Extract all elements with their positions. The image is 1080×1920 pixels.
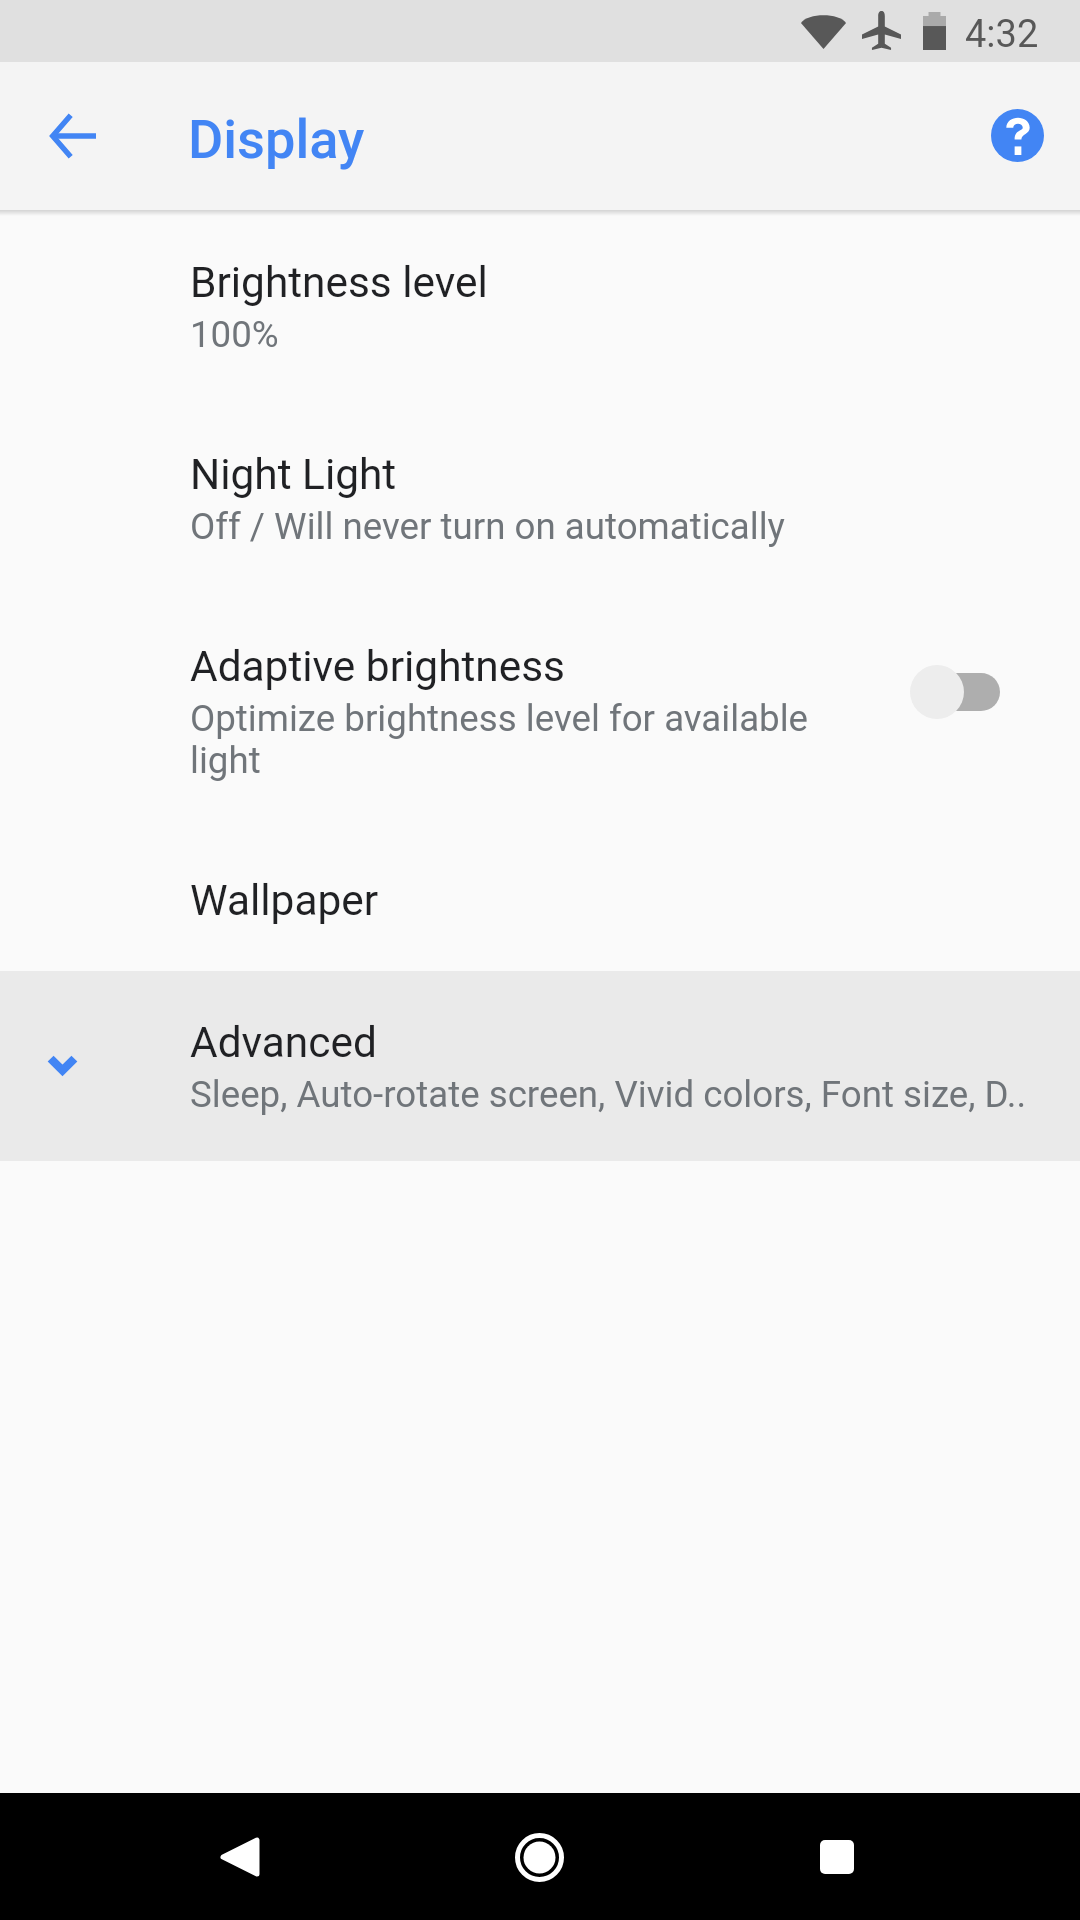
staticText: Night Light: [190, 450, 397, 500]
button[interactable]: Wallpaper: [0, 828, 1080, 971]
staticText: 100%: [190, 313, 279, 356]
staticText: Sleep, Auto-rotate screen, Vivid colors,…: [190, 1073, 1027, 1116]
button[interactable]: Advanced: [0, 971, 1080, 1161]
button[interactable]: Back: [180, 1797, 300, 1917]
staticText: Brightness level: [190, 258, 488, 308]
staticText: Optimize brightness level for available …: [190, 697, 809, 782]
staticText: Wallpaper: [190, 876, 379, 926]
staticText: Off / Will never turn on automatically: [190, 505, 785, 548]
button[interactable]: Brightness level: [0, 210, 1080, 402]
button[interactable]: Navigate up: [25, 88, 121, 184]
staticText: 4:32: [965, 12, 1039, 57]
button[interactable]: Recent apps: [777, 1797, 897, 1917]
button[interactable]: Adaptive brightness toggle, off: [900, 654, 1010, 730]
button[interactable]: Help: [969, 87, 1065, 183]
button[interactable]: Home: [479, 1797, 599, 1917]
button[interactable]: Adaptive brightness: [0, 594, 1080, 828]
button[interactable]: Night Light: [0, 402, 1080, 594]
staticText: Display: [188, 108, 365, 171]
staticText: Advanced: [190, 1018, 377, 1068]
staticText: Adaptive brightness: [190, 642, 565, 692]
